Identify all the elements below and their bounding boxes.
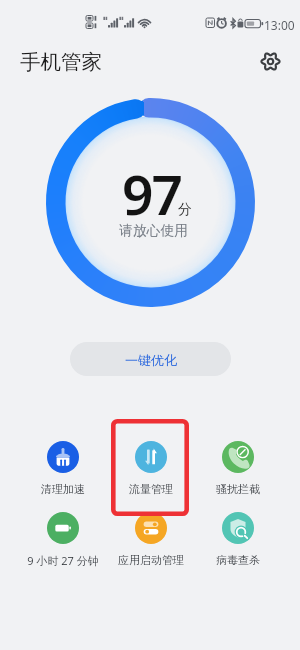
button[interactable]: 9 小时 27 分钟 xyxy=(19,512,107,568)
staticText: 分 xyxy=(178,201,192,219)
staticText: 请放心使用 xyxy=(119,222,188,239)
staticText: 97 xyxy=(122,156,181,231)
staticText: 病毒查杀 xyxy=(216,553,260,567)
button[interactable]: 病毒查杀 xyxy=(194,512,281,567)
button[interactable]: 一键优化 xyxy=(70,342,231,376)
button[interactable]: Settings xyxy=(254,45,286,77)
staticText: 清理加速 xyxy=(41,482,85,496)
staticText: 手机管家 xyxy=(20,49,102,75)
button[interactable]: 清理加速 xyxy=(19,441,107,496)
button[interactable]: 骚扰拦截 xyxy=(194,441,281,496)
staticText: 13:00 xyxy=(264,17,295,33)
staticText: 应用启动管理 xyxy=(118,553,184,567)
staticText: 一键优化 xyxy=(125,352,177,368)
staticText: 流量管理 xyxy=(129,482,173,496)
button[interactable]: 流量管理 xyxy=(107,441,194,496)
staticText: 9 小时 27 分钟 xyxy=(27,553,99,568)
staticText: 骚扰拦截 xyxy=(216,482,260,496)
button[interactable]: 应用启动管理 xyxy=(107,512,194,567)
